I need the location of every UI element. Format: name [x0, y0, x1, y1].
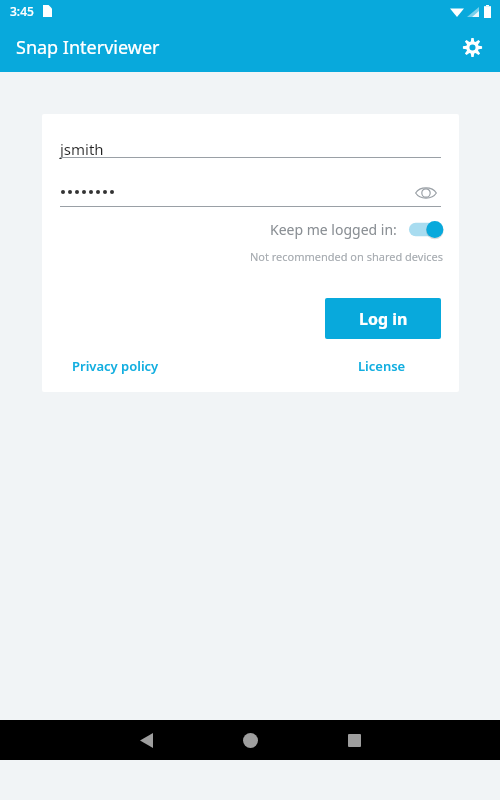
staticText: License	[358, 357, 406, 375]
button[interactable]: Recent apps	[324, 720, 384, 760]
staticText: 3:45	[10, 3, 34, 19]
staticText: Keep me logged in:	[270, 220, 397, 239]
button[interactable]: Home	[220, 720, 280, 760]
staticText: Log in	[359, 308, 408, 330]
button[interactable]: License	[358, 357, 406, 375]
staticText: Not recommended on shared devices	[42, 249, 443, 264]
button[interactable]: Back	[116, 720, 176, 760]
button[interactable]: Settings	[452, 27, 492, 67]
button[interactable]: Privacy policy	[72, 357, 159, 375]
button[interactable]: Keep me logged in:	[42, 220, 443, 239]
staticText: Snap Interviewer	[16, 35, 160, 60]
staticText: jsmith	[60, 139, 104, 159]
button[interactable]: Show password	[409, 176, 443, 210]
staticText: Privacy policy	[72, 357, 159, 375]
button[interactable]: Log in	[325, 298, 441, 339]
